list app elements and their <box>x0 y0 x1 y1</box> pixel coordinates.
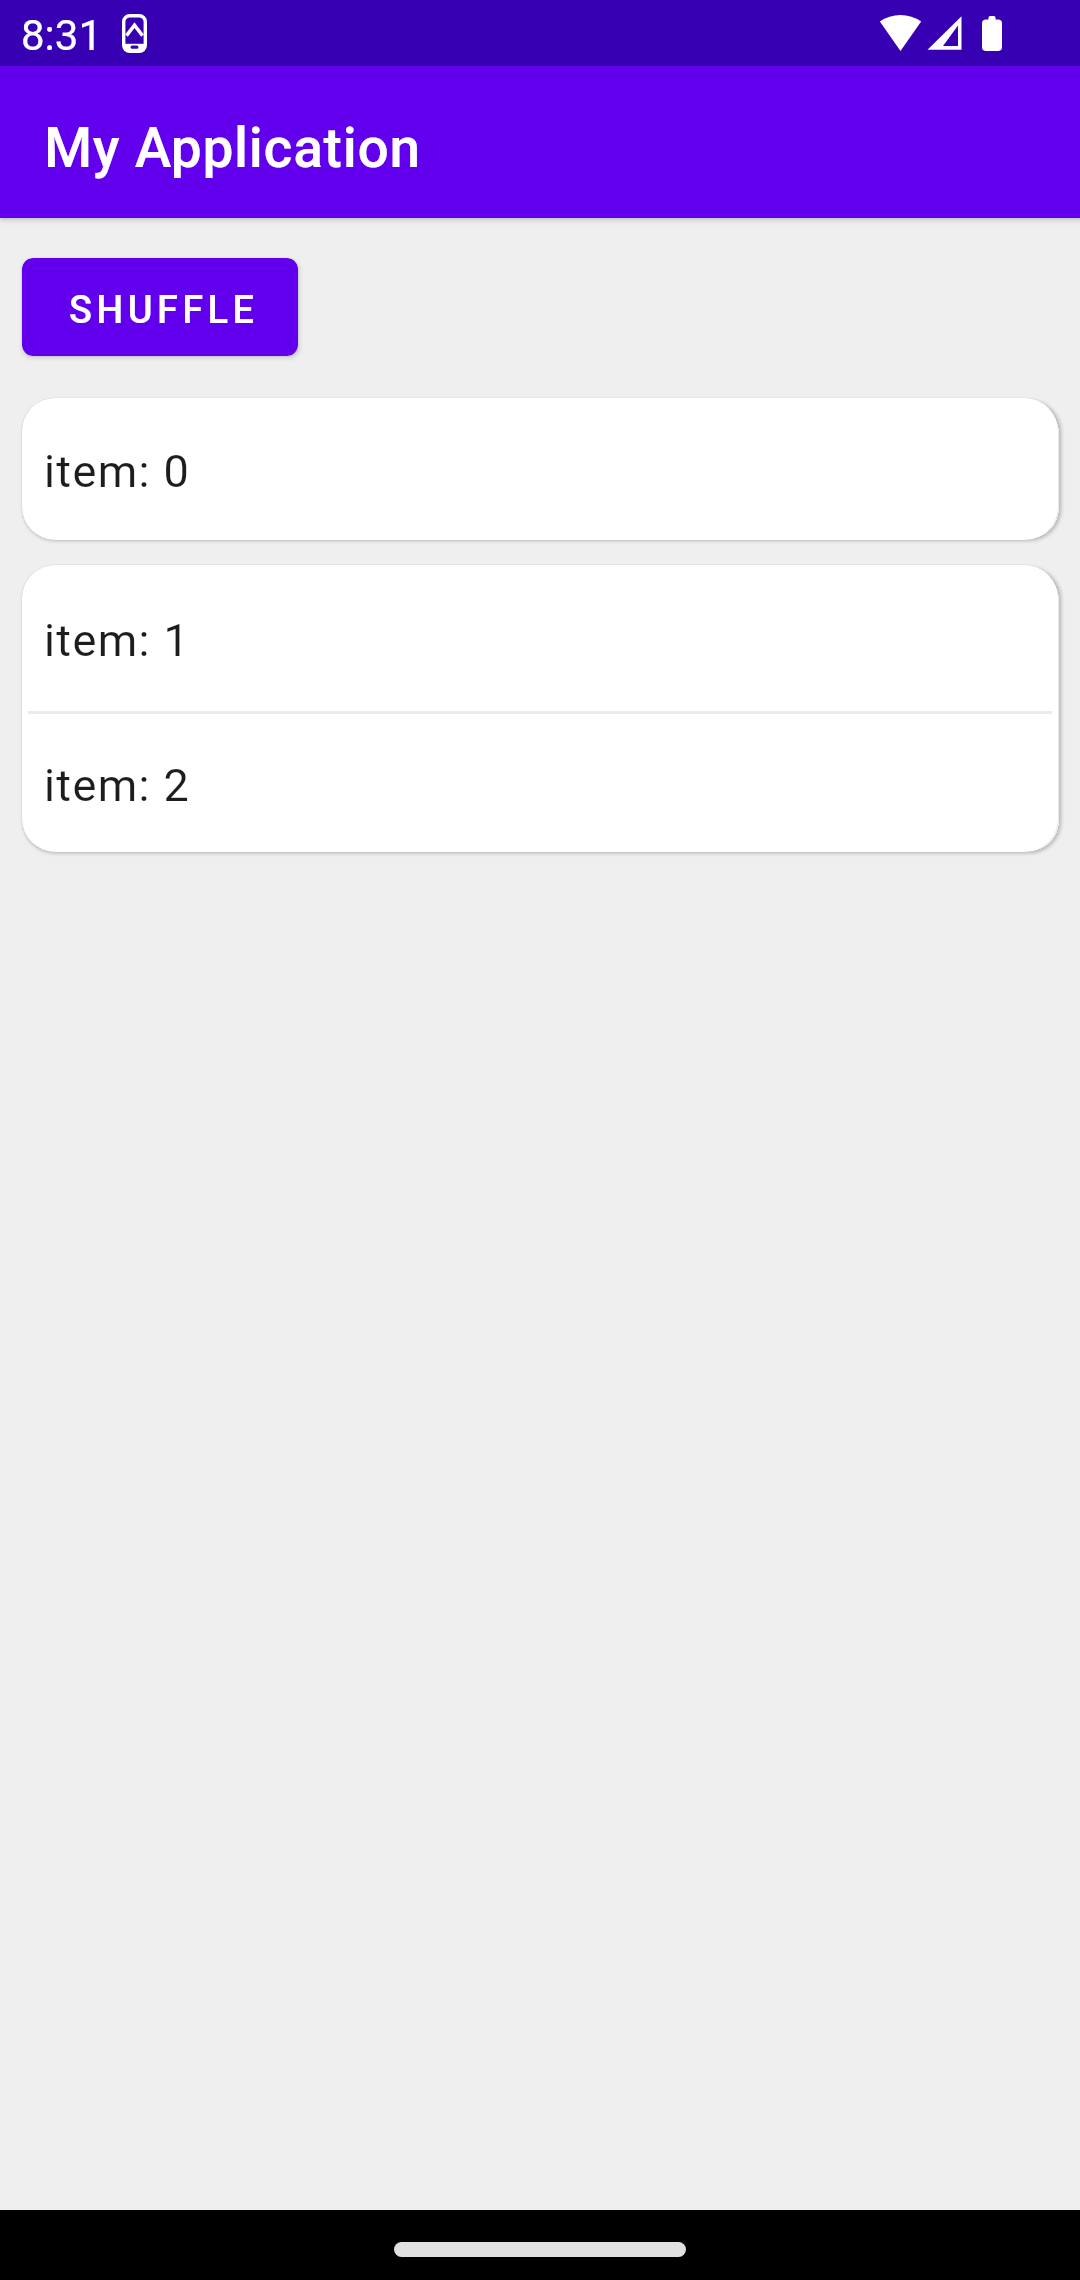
button[interactable]: item: 1 <box>22 565 1058 711</box>
staticText: 8:31 <box>21 11 102 60</box>
staticText: item: 2 <box>44 759 191 812</box>
staticText: item: 1 <box>44 614 191 667</box>
staticText: My Application <box>44 116 421 180</box>
button[interactable]: item: 2 <box>22 714 1058 852</box>
button[interactable]: item: 0 <box>22 398 1058 540</box>
staticText: item: 0 <box>44 445 191 498</box>
staticText: SHUFFLE <box>69 288 259 333</box>
button[interactable]: SHUFFLE <box>22 258 298 356</box>
